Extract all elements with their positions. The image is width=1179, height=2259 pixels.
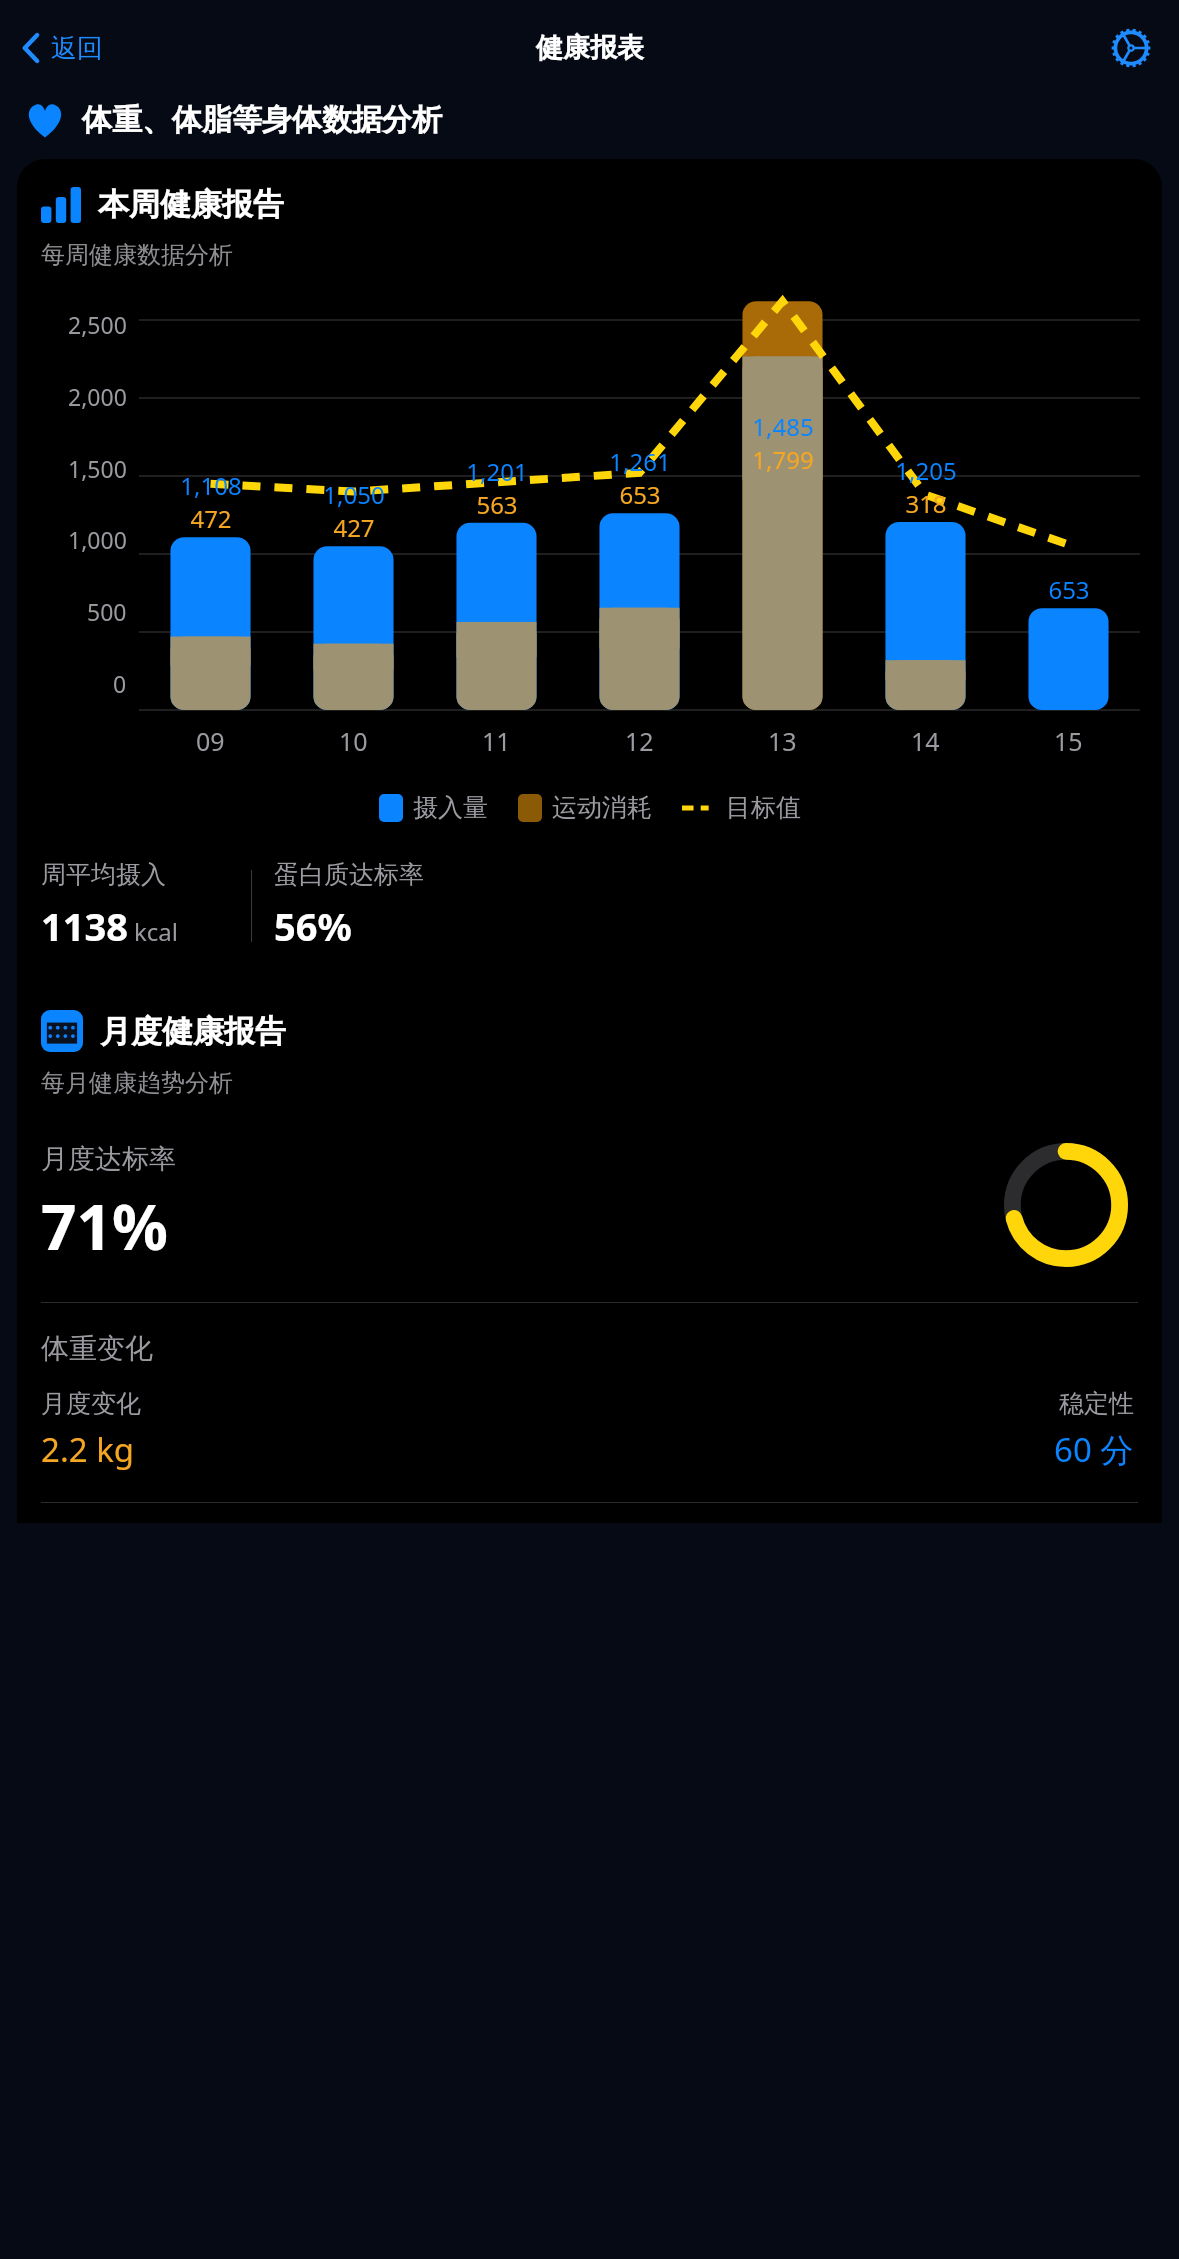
staticText: 1,201 bbox=[466, 455, 528, 488]
staticText: 318 bbox=[905, 487, 947, 520]
staticText: 1,799 bbox=[752, 443, 814, 476]
staticText: 体重变化 bbox=[41, 1331, 153, 1366]
staticText: 2,500 bbox=[68, 309, 127, 340]
staticText: 1,205 bbox=[895, 454, 957, 487]
staticText: 60 分 bbox=[1054, 1427, 1134, 1472]
staticText: 09 bbox=[196, 724, 225, 758]
staticText: 2,000 bbox=[68, 381, 127, 412]
staticText: 500 bbox=[87, 596, 127, 627]
staticText: 56% bbox=[274, 900, 352, 952]
button[interactable]: 体重、体脂等身体数据分析 bbox=[24, 95, 1155, 145]
button[interactable]: 月度健康报告 bbox=[17, 992, 1162, 1523]
staticText: kcal bbox=[134, 915, 178, 948]
staticText: 12 bbox=[625, 724, 654, 758]
staticText: 体重、体脂等身体数据分析 bbox=[82, 101, 442, 139]
button[interactable]: 返回 bbox=[14, 25, 109, 71]
staticText: 13 bbox=[768, 724, 797, 758]
staticText: 1,050 bbox=[323, 478, 385, 511]
staticText: 1,261 bbox=[609, 445, 671, 478]
staticText: 运动消耗 bbox=[552, 792, 652, 823]
staticText: 1,500 bbox=[68, 453, 127, 484]
staticText: 1,485 bbox=[752, 410, 814, 443]
staticText: 1,108 bbox=[180, 469, 242, 502]
staticText: 1138 bbox=[41, 900, 128, 952]
button[interactable]: Settings bbox=[1105, 22, 1157, 74]
staticText: 10 bbox=[339, 724, 368, 758]
staticText: 蛋白质达标率 bbox=[274, 859, 424, 890]
staticText: 15 bbox=[1054, 724, 1083, 758]
staticText: 1,000 bbox=[68, 524, 127, 555]
staticText: 563 bbox=[476, 488, 518, 521]
staticText: 14 bbox=[911, 724, 940, 758]
staticText: 653 bbox=[619, 478, 661, 511]
staticText: 每周健康数据分析 bbox=[41, 240, 233, 270]
staticText: 稳定性 bbox=[1059, 1388, 1134, 1419]
staticText: 2.2 kg bbox=[41, 1427, 135, 1472]
staticText: 本周健康报告 bbox=[98, 185, 284, 224]
staticText: 472 bbox=[190, 502, 232, 535]
staticText: 0 bbox=[113, 668, 127, 699]
button[interactable]: 本周健康报告 bbox=[17, 159, 1162, 992]
staticText: 11 bbox=[482, 724, 511, 758]
staticText: 653 bbox=[1048, 573, 1090, 606]
staticText: 月度达标率 bbox=[41, 1142, 176, 1176]
staticText: 每月健康趋势分析 bbox=[41, 1068, 233, 1098]
staticText: 目标值 bbox=[726, 792, 801, 823]
staticText: 月度健康报告 bbox=[100, 1012, 286, 1051]
staticText: 月度变化 bbox=[41, 1388, 141, 1419]
staticText: 71% bbox=[41, 1184, 168, 1268]
staticText: 摄入量 bbox=[413, 792, 488, 823]
staticText: 周平均摄入 bbox=[41, 859, 166, 890]
staticText: 返回 bbox=[51, 32, 103, 65]
staticText: 427 bbox=[333, 511, 375, 544]
staticText: 健康报表 bbox=[536, 31, 644, 65]
